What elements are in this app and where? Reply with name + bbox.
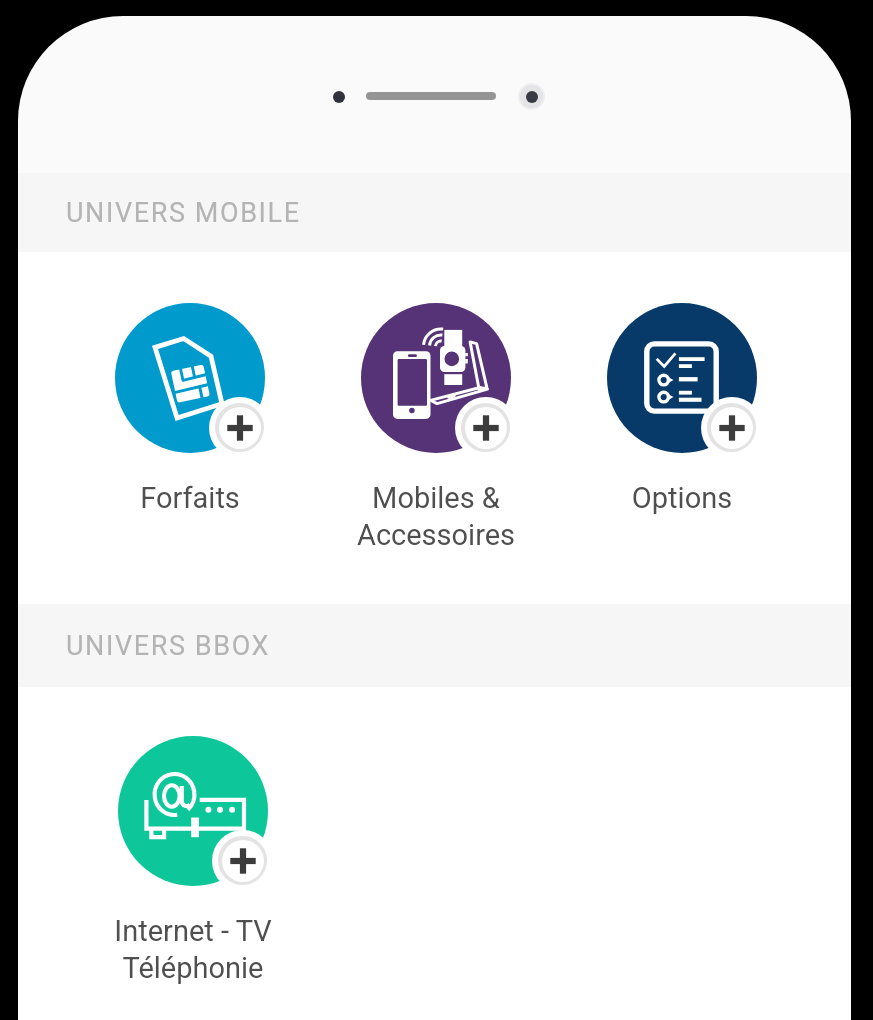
button[interactable]: Ajouter Mobiles & Accessoires [461,403,510,452]
button[interactable]: Ajouter Internet - TV Téléphonie [68,736,318,985]
button[interactable]: Ajouter Mobiles & Accessoires [311,303,561,552]
button[interactable]: Ajouter Forfaits [215,403,264,452]
button[interactable]: Ajouter Internet - TV Téléphonie [218,836,267,885]
staticText: Forfaits [65,481,315,515]
staticText: UNIVERS MOBILE [66,197,301,229]
staticText: Mobiles & Accessoires [311,481,561,552]
staticText: Internet - TV Téléphonie [68,914,318,985]
button[interactable]: Ajouter Options [707,403,756,452]
button[interactable]: Ajouter Options [557,303,807,515]
staticText: UNIVERS BBOX [66,630,271,662]
button[interactable]: Ajouter Forfaits [65,303,315,515]
staticText: Options [557,481,807,515]
